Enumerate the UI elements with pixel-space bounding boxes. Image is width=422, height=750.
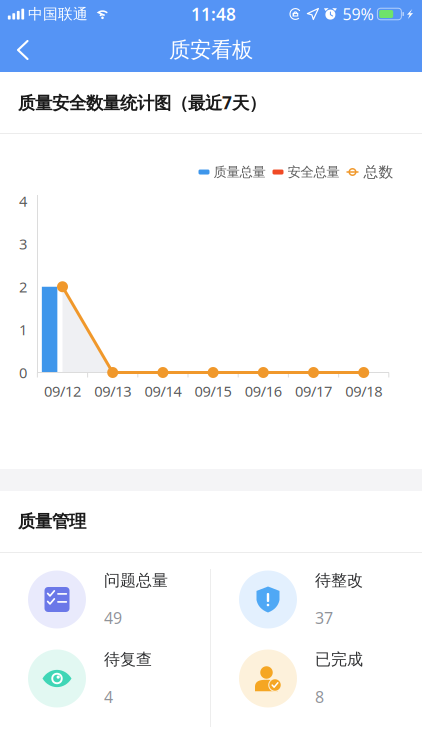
- staticText: 待整改: [315, 570, 363, 590]
- staticText: 中国联通: [28, 5, 88, 23]
- staticText: 0: [19, 363, 27, 382]
- staticText: 已完成: [315, 649, 363, 669]
- staticText: 09/12: [44, 381, 81, 401]
- staticText: 质安看板: [169, 37, 253, 63]
- staticText: 安全总量: [287, 164, 339, 180]
- staticText: 质量总量: [213, 164, 265, 180]
- button[interactable]: 问题总量: [0, 560, 211, 639]
- button[interactable]: 待整改: [211, 560, 422, 639]
- button[interactable]: 已完成: [211, 639, 422, 718]
- staticText: 总数: [363, 163, 393, 181]
- staticText: 问题总量: [104, 570, 168, 590]
- staticText: 09/16: [245, 381, 282, 401]
- staticText: 49: [104, 607, 122, 628]
- staticText: 3: [19, 234, 27, 254]
- staticText: 09/13: [94, 381, 131, 401]
- staticText: 59%: [342, 3, 373, 25]
- staticText: 质量管理: [18, 511, 86, 532]
- staticText: 8: [315, 686, 324, 707]
- button[interactable]: 返回: [0, 28, 43, 72]
- staticText: 09/17: [295, 381, 332, 401]
- staticText: 09/14: [144, 381, 181, 401]
- staticText: 质量安全数量统计图（最近7天）: [18, 91, 266, 114]
- staticText: 37: [315, 607, 333, 628]
- staticText: 09/18: [345, 381, 382, 401]
- button[interactable]: 待复查: [0, 639, 211, 718]
- staticText: 4: [19, 191, 27, 211]
- staticText: 11:48: [191, 2, 236, 25]
- staticText: 待复查: [104, 649, 152, 669]
- staticText: 2: [19, 277, 27, 296]
- staticText: 4: [104, 686, 113, 707]
- staticText: 1: [19, 320, 27, 339]
- staticText: 09/15: [195, 381, 232, 401]
